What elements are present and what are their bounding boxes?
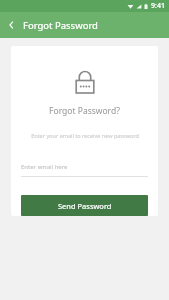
button[interactable]: Back	[5, 18, 19, 32]
button[interactable]: Send Password	[21, 195, 148, 216]
staticText: Forgot Password?	[49, 105, 120, 117]
staticText: Send Password	[58, 201, 112, 211]
button[interactable]: Enter email here	[21, 163, 148, 177]
staticText: Forgot Password	[23, 19, 98, 32]
staticText: Enter email here	[21, 163, 68, 171]
staticText: 9:41	[151, 1, 165, 11]
staticText: Enter your email to receive new password	[31, 132, 139, 139]
